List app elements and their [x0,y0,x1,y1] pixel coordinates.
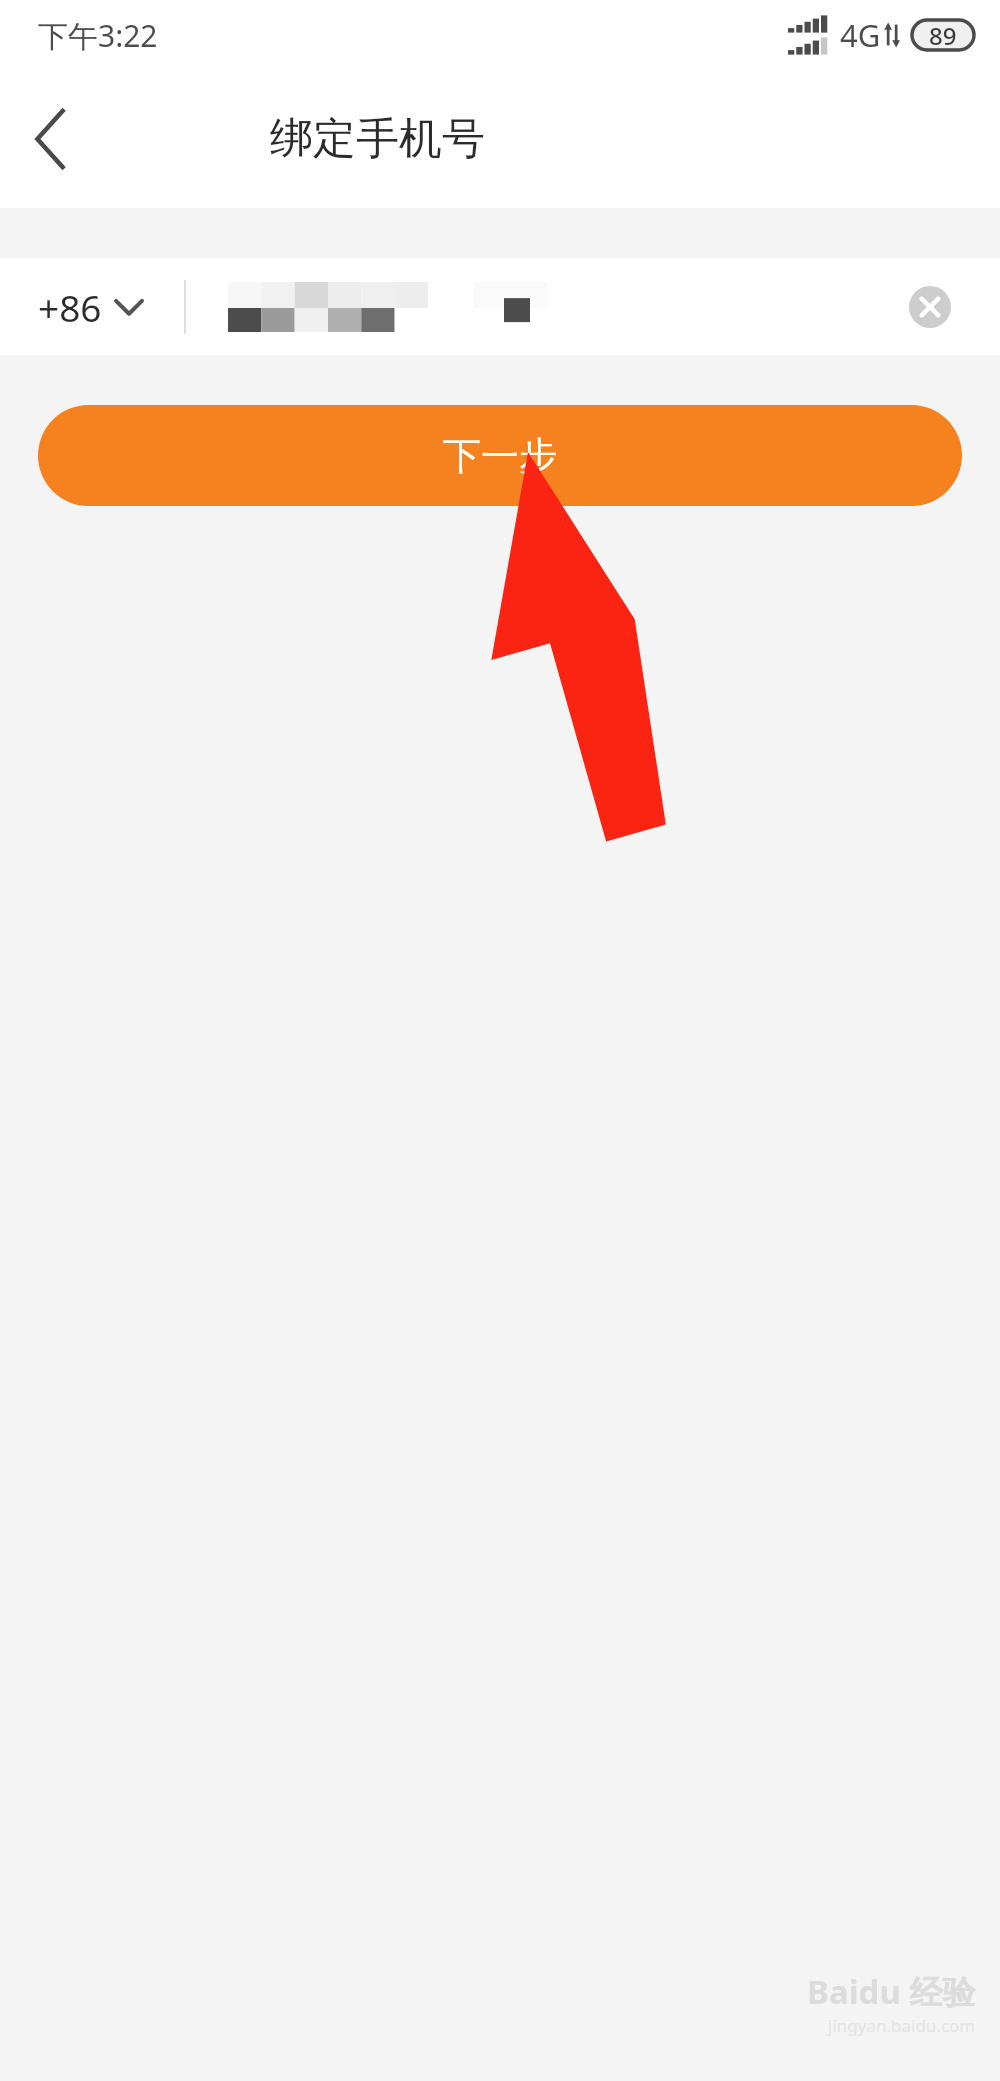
button[interactable]: +86 [38,282,142,332]
staticText: Baidu 经验 [807,1969,976,2014]
staticText: +86 [38,282,102,332]
staticText: 89 [929,19,957,52]
button[interactable]: 返回 [0,89,100,189]
staticText: 下午3:22 [38,15,158,56]
staticText: 下一步 [443,432,557,480]
button[interactable]: 清除 [898,275,962,339]
staticText: 绑定手机号 [270,112,485,166]
staticText: jingyan.baidu.com [828,2014,976,2037]
staticText: 4G [840,14,881,56]
button[interactable]: 下一步 [38,405,962,506]
